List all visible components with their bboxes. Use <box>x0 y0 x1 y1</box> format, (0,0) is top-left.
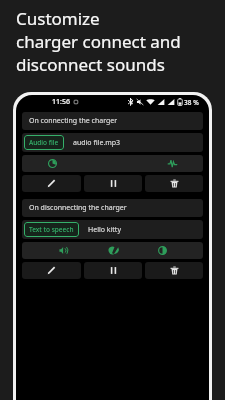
button[interactable]: On connecting the charger <box>22 112 203 130</box>
button[interactable]: Vibration <box>164 155 181 172</box>
staticText: Customize <box>16 7 100 30</box>
button[interactable]: Delete <box>145 262 203 279</box>
button[interactable]: Audio file <box>24 135 64 150</box>
staticText: disconnect sounds <box>16 53 165 76</box>
staticText: 11:56 <box>52 97 70 107</box>
staticText: On disconnecting the charger <box>29 203 127 213</box>
button[interactable]: Delete <box>145 175 203 192</box>
staticText: On connecting the charger <box>29 116 118 126</box>
staticText: Hello kitty <box>88 225 121 235</box>
button[interactable]: Text to speech <box>22 220 203 239</box>
button[interactable]: Pause <box>84 175 142 192</box>
staticText: audio file.mp3 <box>73 138 121 148</box>
staticText: Audio file <box>29 138 59 147</box>
button[interactable]: Text to speech <box>24 222 79 237</box>
button[interactable]: Audio file <box>22 133 203 152</box>
staticText: Text to speech <box>29 225 74 234</box>
button[interactable]: Edit <box>22 175 81 192</box>
button[interactable]: Contrast <box>154 242 171 259</box>
button[interactable]: Pause <box>84 262 142 279</box>
button[interactable]: On disconnecting the charger <box>22 199 203 217</box>
button[interactable]: Edit <box>22 262 81 279</box>
button[interactable]: Volume level <box>44 155 61 172</box>
button[interactable]: Do not disturb <box>104 242 121 259</box>
button[interactable]: Volume <box>55 242 72 259</box>
staticText: charger connect and <box>16 30 181 53</box>
staticText: 38 % <box>184 98 199 107</box>
